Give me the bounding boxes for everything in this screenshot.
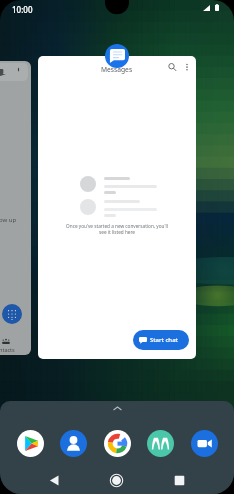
button[interactable]: Play Store <box>17 430 44 457</box>
button[interactable]: ow up <box>0 61 31 355</box>
button[interactable]: Contacts <box>60 430 87 457</box>
staticText: 10:00 <box>12 4 33 15</box>
button[interactable]: Google <box>104 430 131 457</box>
button[interactable]: Search <box>165 60 179 74</box>
button[interactable]: Start chat <box>133 330 189 350</box>
button[interactable]: Dialpad <box>2 304 22 324</box>
button[interactable]: Messages <box>105 44 129 68</box>
button[interactable]: More options <box>180 60 194 74</box>
staticText: Messages <box>101 65 133 74</box>
staticText: ntacts <box>0 346 15 353</box>
button[interactable]: Home <box>106 470 127 491</box>
button[interactable]: Moto <box>147 430 174 457</box>
staticText: Once you've started a new conversation, … <box>38 223 196 236</box>
button[interactable]: Recents <box>169 470 190 491</box>
button[interactable]: Meet <box>191 430 218 457</box>
button[interactable]: Messages <box>38 56 196 359</box>
staticText: ow up <box>0 216 17 224</box>
staticText: Start chat <box>150 336 178 344</box>
button[interactable]: Back <box>44 470 65 491</box>
